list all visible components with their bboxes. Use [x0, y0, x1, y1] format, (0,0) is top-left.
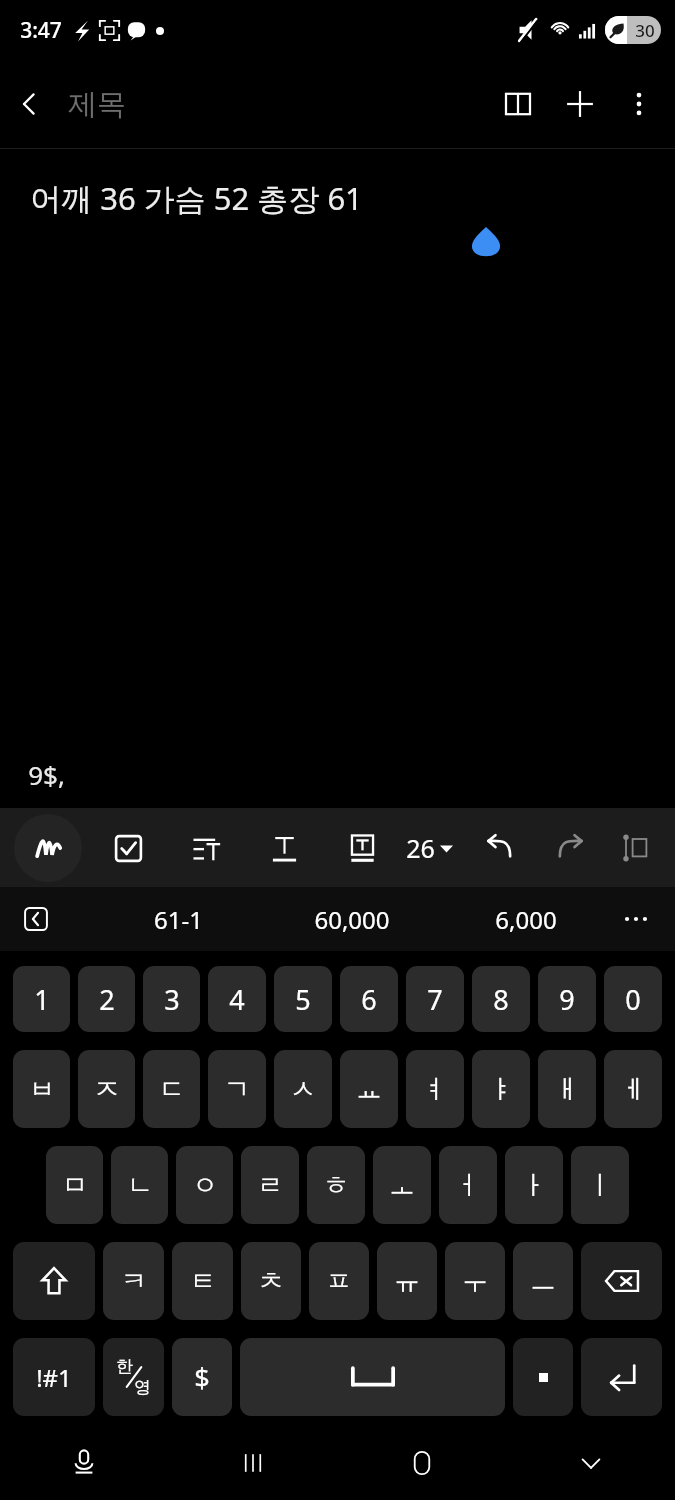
button[interactable]: ㅎ	[307, 1146, 365, 1224]
button[interactable]: 1	[13, 966, 70, 1032]
button[interactable]: Home	[337, 1425, 506, 1500]
staticText: 3	[164, 981, 180, 1018]
button[interactable]: Paragraph style	[176, 818, 236, 878]
staticText: 30	[635, 19, 655, 42]
button[interactable]: More options	[611, 76, 667, 132]
staticText: ㅅ	[290, 1073, 316, 1106]
staticText: ㅁ	[62, 1169, 88, 1202]
button[interactable]: 2	[78, 966, 135, 1032]
button[interactable]: ㅊ	[241, 1242, 301, 1320]
staticText: ㅓ	[455, 1169, 481, 1202]
staticText: !#1	[36, 1361, 72, 1394]
button[interactable]: ㅛ	[340, 1050, 398, 1128]
button[interactable]: 4	[208, 966, 266, 1032]
staticText: 0	[625, 981, 641, 1018]
button[interactable]: ㅗ	[373, 1146, 431, 1224]
staticText: 6,000	[495, 903, 557, 936]
button[interactable]: ㄹ	[241, 1146, 299, 1224]
button[interactable]: Checklist	[98, 818, 158, 878]
staticText: ㅂ	[29, 1073, 55, 1106]
staticText: ㄱ	[224, 1073, 250, 1106]
button[interactable]: ㅂ	[13, 1050, 70, 1128]
button[interactable]: Space	[240, 1338, 505, 1416]
staticText: 5	[295, 981, 311, 1018]
button[interactable]: 61-1	[92, 887, 265, 951]
button[interactable]: ㄱ	[208, 1050, 266, 1128]
button[interactable]: ㄴ	[111, 1146, 168, 1224]
staticText: ㅋ	[121, 1265, 147, 1298]
staticText: ㅕ	[422, 1073, 448, 1106]
staticText: $	[194, 1359, 210, 1396]
button[interactable]: $	[172, 1338, 232, 1416]
button[interactable]: ㅈ	[78, 1050, 135, 1128]
staticText: ㅜ	[462, 1265, 488, 1298]
button[interactable]: Previous suggestions	[14, 897, 58, 941]
button[interactable]: ㅠ	[377, 1242, 437, 1320]
button[interactable]: ㅇ	[176, 1146, 233, 1224]
button[interactable]: 0	[604, 966, 662, 1032]
button[interactable]: Redo	[543, 819, 601, 877]
staticText: 6	[361, 981, 377, 1018]
button[interactable]: Voice input	[0, 1425, 168, 1500]
staticText: 영	[134, 1377, 151, 1398]
staticText: 2	[99, 981, 115, 1018]
button[interactable]: Line spacing	[613, 826, 657, 870]
staticText: 9$,	[28, 757, 65, 792]
button[interactable]: Enter	[581, 1338, 662, 1416]
staticText: ㅌ	[190, 1265, 216, 1298]
button[interactable]: !#1	[13, 1338, 95, 1416]
button[interactable]: 8	[472, 966, 530, 1032]
button[interactable]: ㅓ	[439, 1146, 497, 1224]
button[interactable]: Text box	[332, 818, 392, 878]
button[interactable]: 3	[143, 966, 200, 1032]
staticText: ㅔ	[620, 1073, 646, 1106]
staticText: ㅠ	[394, 1265, 420, 1298]
staticText: ㅊ	[258, 1265, 284, 1298]
button[interactable]: ㅕ	[406, 1050, 464, 1128]
button[interactable]: ㅁ	[46, 1146, 103, 1224]
button[interactable]: 5	[274, 966, 332, 1032]
button[interactable]: Text format	[254, 818, 314, 878]
button[interactable]: 60,000	[265, 887, 439, 951]
button[interactable]: Korean English toggle	[103, 1338, 164, 1416]
button[interactable]: 26	[400, 821, 459, 875]
staticText: ㅑ	[488, 1073, 514, 1106]
button[interactable]	[513, 1338, 573, 1416]
button[interactable]: ㅔ	[604, 1050, 662, 1128]
button[interactable]: 9	[538, 966, 596, 1032]
button[interactable]: More suggestions	[613, 896, 659, 942]
staticText: 8	[493, 981, 509, 1018]
button[interactable]: 7	[406, 966, 464, 1032]
button[interactable]: ㅑ	[472, 1050, 530, 1128]
button[interactable]: 6,000	[439, 887, 613, 951]
button[interactable]: Add	[549, 73, 611, 135]
button[interactable]: 6	[340, 966, 398, 1032]
button[interactable]: Shift	[13, 1242, 95, 1320]
button[interactable]: Back	[0, 74, 60, 134]
button[interactable]: Hide keyboard	[506, 1425, 675, 1500]
button[interactable]: Handwriting	[14, 814, 82, 882]
staticText: ㄷ	[159, 1073, 185, 1106]
button[interactable]: ㅏ	[505, 1146, 563, 1224]
button[interactable]: Backspace	[581, 1242, 662, 1320]
staticText: ㅡ	[530, 1265, 556, 1298]
button[interactable]: ㅋ	[103, 1242, 164, 1320]
button[interactable]: ㄷ	[143, 1050, 200, 1128]
button[interactable]: Undo	[469, 819, 527, 877]
button[interactable]: Recent apps	[168, 1425, 337, 1500]
button[interactable]: ㅡ	[513, 1242, 573, 1320]
staticText: ㄹ	[257, 1169, 283, 1202]
staticText: 1	[34, 981, 50, 1018]
staticText: 60,000	[314, 903, 390, 936]
button[interactable]: ㅅ	[274, 1050, 332, 1128]
button[interactable]: Reading mode	[487, 73, 549, 135]
staticText: 4	[229, 981, 245, 1018]
button[interactable]: ㅍ	[309, 1242, 369, 1320]
button[interactable]: ㅌ	[172, 1242, 233, 1320]
staticText: ㅗ	[389, 1169, 415, 1202]
button[interactable]: ㅜ	[445, 1242, 505, 1320]
staticText: ㅎ	[323, 1169, 349, 1202]
button[interactable]: ㅐ	[538, 1050, 596, 1128]
button[interactable]: ㅣ	[571, 1146, 629, 1224]
staticText: 제목	[68, 86, 126, 123]
